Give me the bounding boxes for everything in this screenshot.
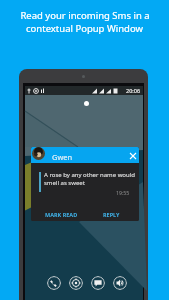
staticText: 20:06 bbox=[126, 87, 141, 94]
button[interactable]: Gwen bbox=[31, 147, 139, 163]
button[interactable]: Volume bbox=[113, 276, 127, 290]
staticText: contextual Popup Window bbox=[26, 22, 143, 35]
button[interactable]: Messages bbox=[91, 276, 105, 290]
button[interactable]: Close bbox=[126, 149, 139, 162]
staticText: REPLY bbox=[103, 211, 120, 218]
staticText: A rose by any other name would bbox=[44, 171, 135, 179]
button[interactable]: MARK READ bbox=[45, 211, 78, 218]
button[interactable]: Browser bbox=[69, 276, 83, 290]
staticText: 19:55 bbox=[116, 189, 130, 196]
button[interactable]: Phone bbox=[47, 276, 61, 290]
staticText: Gwen bbox=[52, 152, 73, 162]
staticText: Read your incoming Sms in a bbox=[20, 9, 150, 22]
staticText: smell as sweet bbox=[44, 179, 85, 187]
button[interactable]: REPLY bbox=[103, 211, 120, 218]
staticText: MARK READ bbox=[45, 211, 78, 218]
